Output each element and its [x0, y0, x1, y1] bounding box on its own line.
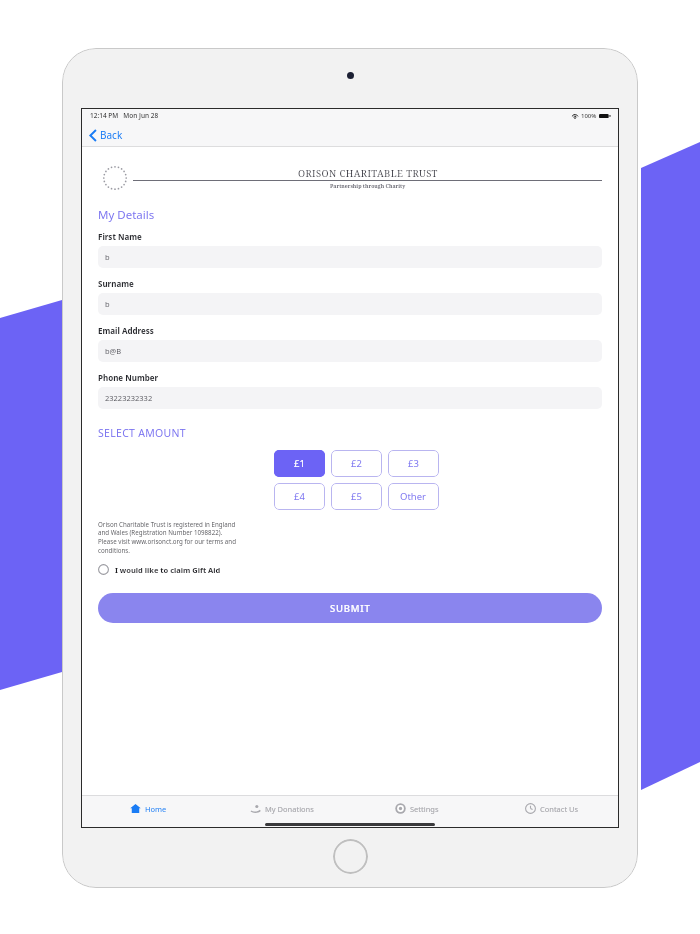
button[interactable]: £2	[331, 450, 382, 477]
button[interactable]: Settings	[349, 800, 484, 817]
staticText: Home	[145, 804, 167, 814]
other: Home	[130, 803, 141, 814]
staticText: 100%	[581, 112, 597, 120]
staticText: Email Address	[98, 325, 154, 336]
button[interactable]: Other	[388, 483, 439, 510]
button[interactable]: My Donations	[215, 800, 349, 817]
staticText: Back	[100, 128, 123, 142]
staticText: 12:14 PM Mon Jun 28	[90, 111, 159, 120]
button[interactable]: b@B	[98, 340, 602, 362]
staticText: Other	[400, 490, 427, 503]
button[interactable]: Back	[87, 125, 126, 145]
staticText: Phone Number	[98, 372, 159, 383]
staticText: b	[105, 299, 110, 309]
staticText: b@B	[105, 346, 122, 356]
other: Contact Us	[525, 803, 536, 814]
button[interactable]: £5	[331, 483, 382, 510]
staticText: £2	[351, 457, 362, 470]
button[interactable]: SUBMIT	[98, 593, 602, 623]
button[interactable]: Home	[81, 800, 215, 817]
staticText: Orison Charitable Trust is registered in…	[98, 520, 236, 554]
staticText: £1	[294, 457, 305, 470]
staticText: SUBMIT	[330, 602, 371, 615]
staticText: First Name	[98, 231, 142, 242]
button[interactable]: £3	[388, 450, 439, 477]
button[interactable]: £1	[274, 450, 325, 477]
other: My Donations	[250, 803, 261, 814]
button[interactable]: Contact Us	[484, 800, 619, 817]
staticText: I would like to claim Gift Aid	[115, 565, 221, 575]
staticText: 23223232332	[105, 393, 153, 403]
other: Settings	[395, 803, 406, 814]
staticText: My Details	[98, 207, 155, 223]
staticText: Partnership through Charity	[330, 182, 406, 189]
staticText: £4	[294, 490, 305, 503]
staticText: ORISON CHARITABLE TRUST	[298, 167, 438, 180]
button[interactable]: £4	[274, 483, 325, 510]
staticText: £3	[408, 457, 419, 470]
staticText: My Donations	[265, 804, 314, 814]
staticText: Settings	[410, 804, 439, 814]
button[interactable]: I would like to claim Gift Aid	[98, 562, 221, 577]
staticText: £5	[351, 490, 362, 503]
staticText: Surname	[98, 278, 134, 289]
button[interactable]: 23223232332	[98, 387, 602, 409]
staticText: SELECT AMOUNT	[98, 426, 186, 440]
staticText: b	[105, 252, 110, 262]
staticText: Contact Us	[540, 804, 579, 814]
